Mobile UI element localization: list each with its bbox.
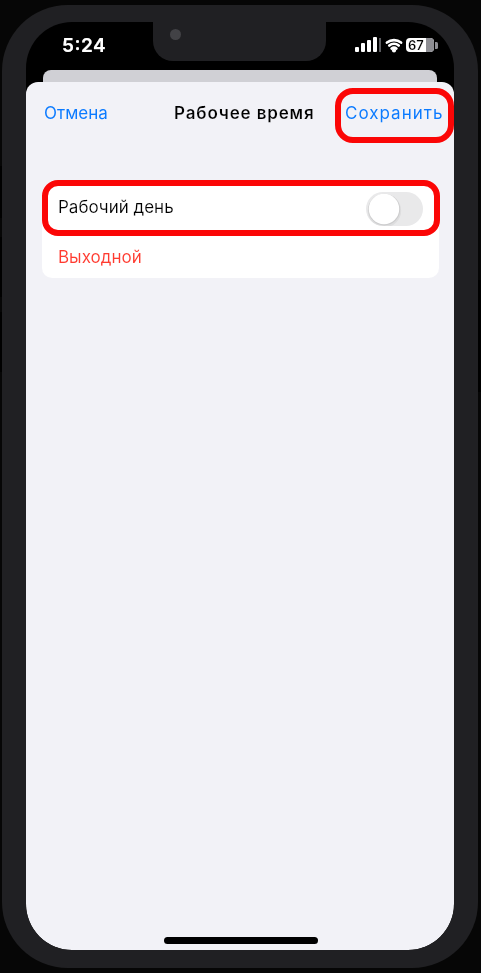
- button[interactable]: Выходной: [42, 232, 439, 278]
- button[interactable]: [366, 192, 423, 226]
- staticText: Выходной: [58, 247, 142, 268]
- staticText: Сохранить: [345, 103, 444, 124]
- staticText: 5:24: [62, 34, 107, 56]
- staticText: Рабочее время: [174, 103, 315, 124]
- staticText: Отмена: [44, 103, 108, 124]
- button[interactable]: Сохранить: [335, 88, 454, 143]
- button[interactable]: Отмена: [44, 98, 120, 128]
- staticText: Рабочий день: [58, 197, 174, 218]
- button[interactable]: Рабочий день: [42, 186, 439, 232]
- staticText: 67: [408, 37, 424, 53]
